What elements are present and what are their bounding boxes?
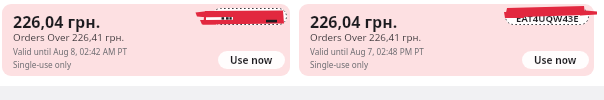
staticText: Valid until Aug 7, 02:48 PM PT: [310, 46, 424, 57]
staticText: EAT4UQW43E: [218, 12, 281, 25]
button[interactable]: 226,04 грн.: [2, 4, 290, 76]
staticText: Single-use only: [13, 59, 72, 70]
staticText: Orders Over 226,41 грн.: [310, 31, 422, 44]
button[interactable]: Coupon code: [505, 8, 589, 25]
button[interactable]: Coupon code: [212, 8, 287, 25]
button[interactable]: 226,04 грн.: [299, 4, 594, 76]
staticText: Use now: [534, 53, 577, 67]
staticText: Use now: [230, 53, 273, 67]
staticText: Valid until Aug 8, 02:42 AM PT: [13, 46, 127, 57]
button[interactable]: Use now: [218, 51, 285, 69]
button[interactable]: Use now: [522, 51, 589, 69]
staticText: EAT4UQW43E: [516, 12, 579, 25]
staticText: 226,04 грн.: [13, 11, 101, 33]
staticText: Orders Over 226,41 грн.: [13, 31, 125, 44]
staticText: 226,04 грн.: [310, 11, 398, 33]
staticText: Single-use only: [310, 59, 369, 70]
